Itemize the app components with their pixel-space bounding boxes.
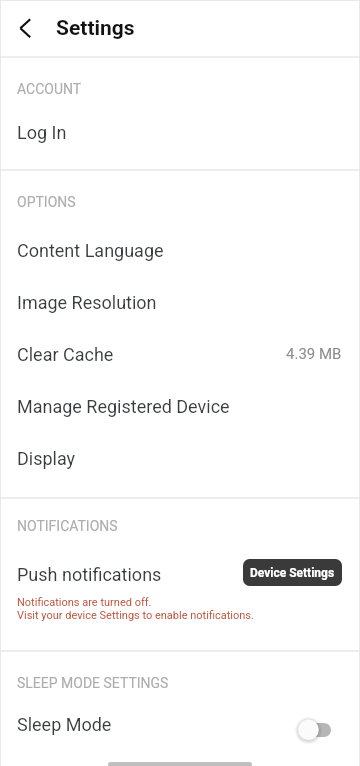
staticText: Display (17, 448, 76, 469)
button[interactable]: Clear Cache (0, 326, 360, 378)
staticText: ACCOUNT (17, 81, 82, 97)
staticText: NOTIFICATIONS (17, 518, 118, 534)
staticText: Image Resolution (17, 292, 157, 313)
staticText: Clear Cache (17, 344, 114, 365)
staticText: 4.39 MB (286, 345, 342, 363)
staticText: Push notifications (17, 564, 162, 585)
button[interactable]: Sleep Mode (0, 700, 360, 752)
staticText: Content Language (17, 240, 164, 261)
staticText: Log In (17, 122, 67, 143)
button[interactable]: Log In (0, 104, 360, 159)
button[interactable]: Display (0, 430, 360, 482)
staticText: Manage Registered Device (17, 396, 230, 417)
button[interactable]: Push notifications (0, 548, 360, 596)
staticText: SLEEP MODE SETTINGS (17, 675, 169, 691)
staticText: Notifications are turned off. (17, 596, 152, 609)
button[interactable]: Manage Registered Device (0, 378, 360, 430)
staticText: Sleep Mode (17, 714, 112, 735)
staticText: Settings (56, 16, 135, 41)
staticText: Visit your device Settings to enable not… (17, 609, 254, 622)
button[interactable]: Navigate up (4, 6, 48, 50)
button[interactable]: Device Settings (243, 559, 342, 586)
staticText: Device Settings (250, 566, 335, 580)
button[interactable]: Image Resolution (0, 274, 360, 326)
staticText: OPTIONS (17, 194, 76, 210)
button[interactable]: Content Language (0, 222, 360, 274)
